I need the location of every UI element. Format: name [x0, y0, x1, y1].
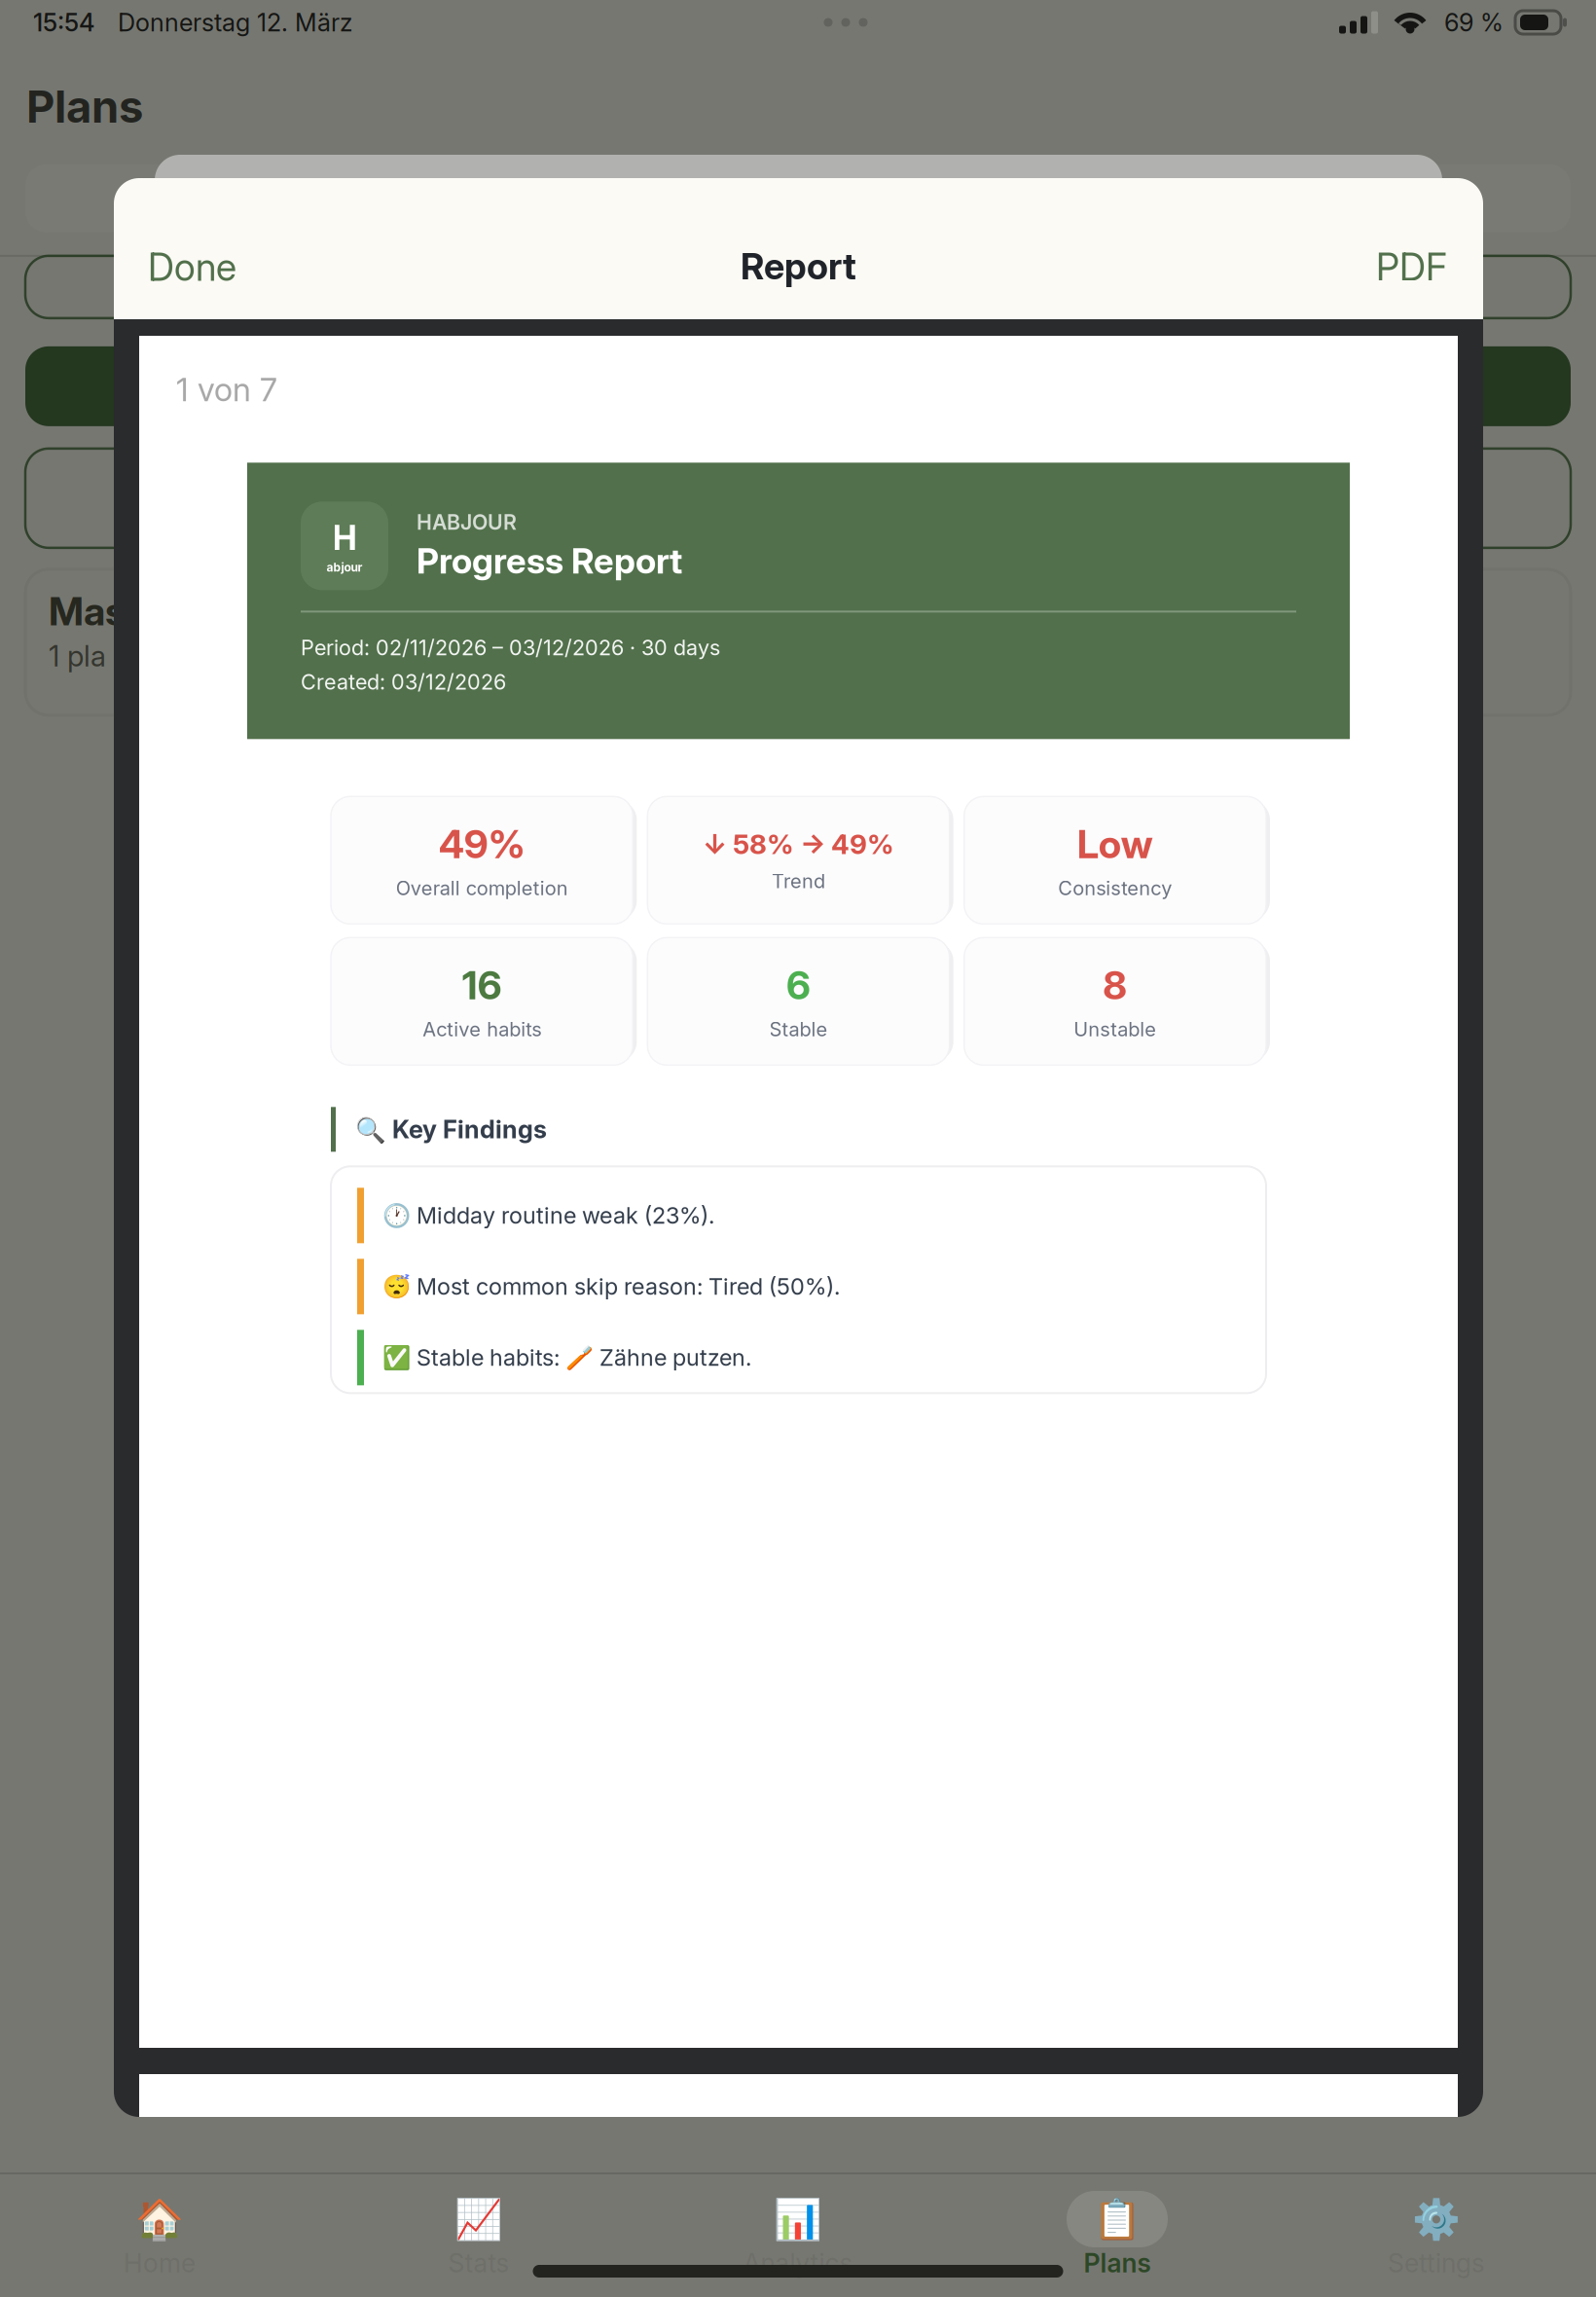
- staticText: Progress Report: [417, 540, 682, 582]
- staticText: Low: [1077, 820, 1153, 868]
- staticText: 1 pla: [49, 639, 106, 673]
- staticText: Period: 02/11/2026 – 03/12/2026 · 30 day…: [301, 635, 720, 660]
- staticText: 16: [462, 962, 502, 1009]
- staticText: Trend: [772, 869, 825, 893]
- staticText: Analytics: [743, 2247, 853, 2279]
- staticText: Unstable: [1074, 1017, 1156, 1041]
- staticText: 1 von 7: [176, 370, 277, 409]
- staticText: PDF: [1376, 244, 1447, 290]
- staticText: HABJOUR: [417, 510, 517, 535]
- staticText: 8: [1103, 962, 1127, 1009]
- staticText: ✅ Stable habits: 🪥 Zähne putzen.: [382, 1344, 751, 1371]
- button[interactable]: 📋: [958, 2174, 1277, 2236]
- staticText: 🏠: [135, 2196, 184, 2242]
- staticText: 😴 Most common skip reason: Tired (50%).: [382, 1273, 840, 1300]
- staticText: 📋: [1093, 2196, 1142, 2242]
- staticText: Plans: [1084, 2247, 1151, 2279]
- button[interactable]: ⚙️: [1277, 2174, 1596, 2236]
- staticText: 49%: [439, 820, 525, 868]
- staticText: Report: [741, 244, 856, 288]
- staticText: Consistency: [1058, 876, 1172, 900]
- staticText: H: [332, 517, 357, 558]
- staticText: 📊: [774, 2196, 822, 2242]
- staticText: Donnerstag 12. März: [118, 7, 352, 37]
- staticText: 📈: [454, 2196, 503, 2242]
- staticText: ⚙️: [1412, 2196, 1461, 2242]
- staticText: Done: [148, 244, 236, 290]
- staticText: 🕐 Midday routine weak (23%).: [382, 1202, 714, 1229]
- button[interactable]: 🏠: [0, 2174, 319, 2236]
- staticText: abjour: [326, 560, 363, 574]
- staticText: 69 %: [1444, 7, 1504, 37]
- staticText: Overall completion: [396, 876, 568, 900]
- staticText: 🔍 Key Findings: [355, 1114, 547, 1144]
- staticText: Plans: [26, 80, 143, 133]
- staticText: 15:54: [33, 7, 94, 37]
- button[interactable]: PDF: [1366, 233, 1457, 302]
- button[interactable]: 📊: [638, 2174, 958, 2236]
- button[interactable]: 📈: [319, 2174, 638, 2236]
- staticText: Mas: [49, 588, 126, 635]
- staticText: 6: [786, 962, 811, 1009]
- button[interactable]: Done: [138, 233, 246, 302]
- staticText: ↓ 58% → 49%: [703, 828, 894, 861]
- staticText: Active habits: [423, 1017, 541, 1041]
- staticText: Stable: [769, 1017, 828, 1041]
- staticText: Created: 03/12/2026: [301, 669, 506, 695]
